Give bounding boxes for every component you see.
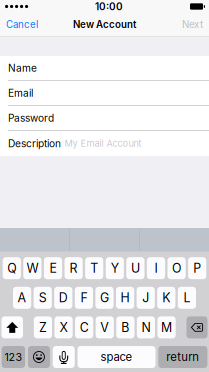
button[interactable]: Z	[34, 316, 52, 338]
button[interactable]: Next	[176, 13, 209, 35]
button[interactable]: Description	[0, 131, 209, 156]
staticText: S	[39, 290, 47, 305]
staticText: Y	[111, 261, 119, 276]
button[interactable]: Email	[0, 81, 209, 106]
button[interactable]: R	[64, 257, 83, 279]
button[interactable]: L	[178, 287, 196, 309]
button[interactable]: X	[54, 316, 73, 338]
staticText: W	[26, 261, 38, 276]
button[interactable]: P	[188, 257, 206, 279]
button[interactable]: Emoji	[28, 346, 50, 368]
staticText: I	[154, 261, 157, 276]
staticText: B	[121, 320, 129, 335]
staticText: Description	[8, 137, 61, 150]
button[interactable]: H	[116, 287, 134, 309]
button[interactable]: Q	[3, 257, 21, 279]
staticText: P	[193, 261, 201, 276]
staticText: E	[49, 261, 56, 276]
staticText: V	[100, 320, 109, 335]
staticText: G	[100, 290, 109, 305]
button[interactable]: D	[54, 287, 72, 309]
button[interactable]: V	[96, 316, 114, 338]
staticText: Z	[39, 320, 47, 335]
button[interactable]: G	[95, 287, 114, 309]
button[interactable]: M	[157, 316, 176, 338]
staticText: Email	[8, 87, 33, 99]
button[interactable]: S	[34, 287, 52, 309]
staticText: 123	[4, 350, 22, 363]
staticText: M	[161, 320, 172, 335]
staticText: J	[142, 290, 149, 305]
staticText: R	[70, 261, 78, 276]
staticText: Name	[8, 62, 37, 74]
staticText: C	[80, 320, 89, 335]
button[interactable]: J	[137, 287, 155, 309]
button[interactable]: A	[13, 287, 31, 309]
button[interactable]: space	[78, 346, 156, 368]
staticText: My Email Account	[64, 138, 141, 149]
button[interactable]: Cancel	[0, 13, 44, 35]
button[interactable]: E	[44, 257, 62, 279]
button[interactable]: K	[157, 287, 175, 309]
staticText: T	[90, 261, 98, 276]
button[interactable]: Password	[0, 106, 209, 131]
staticText: Cancel	[6, 19, 38, 30]
button[interactable]: U	[126, 257, 144, 279]
button[interactable]: 123	[2, 346, 25, 368]
staticText: A	[18, 290, 27, 305]
staticText: 10:00	[95, 0, 123, 13]
staticText: D	[59, 290, 68, 305]
staticText: H	[121, 290, 130, 305]
button[interactable]: Name	[0, 56, 209, 81]
button[interactable]: C	[75, 316, 93, 338]
button[interactable]: Delete	[186, 316, 207, 338]
staticText: New Account	[73, 19, 136, 30]
button[interactable]: B	[116, 316, 134, 338]
button[interactable]: Dictate	[53, 346, 75, 368]
button[interactable]: Y	[106, 257, 124, 279]
staticText: return	[166, 350, 199, 364]
button[interactable]: Shift	[1, 316, 23, 338]
staticText: F	[80, 290, 87, 305]
staticText: O	[172, 261, 181, 276]
button[interactable]: return	[158, 346, 207, 368]
staticText: L	[183, 290, 190, 305]
staticText: U	[131, 261, 140, 276]
staticText: Password	[8, 112, 54, 124]
button[interactable]: W	[23, 257, 41, 279]
staticText: N	[141, 320, 150, 335]
button[interactable]: T	[85, 257, 103, 279]
staticText: X	[59, 320, 67, 335]
staticText: Next	[182, 19, 203, 30]
button[interactable]: F	[75, 287, 93, 309]
button[interactable]: N	[137, 316, 155, 338]
button[interactable]: I	[147, 257, 165, 279]
staticText: space	[101, 350, 133, 364]
staticText: K	[162, 290, 170, 305]
button[interactable]: O	[167, 257, 186, 279]
staticText: Q	[7, 261, 16, 276]
